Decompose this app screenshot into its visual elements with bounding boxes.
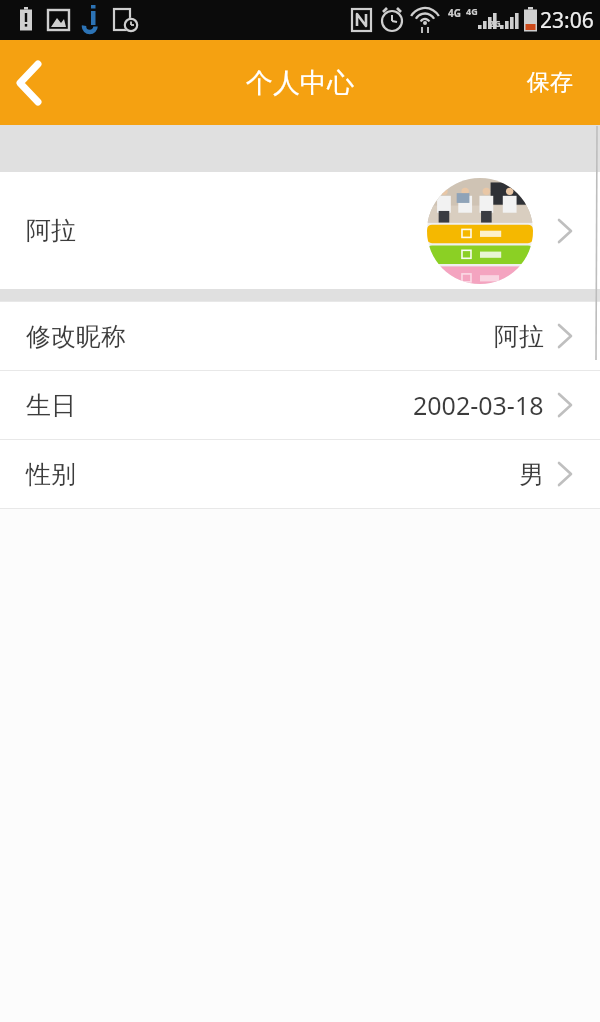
staticText: 2002-03-18 bbox=[413, 388, 544, 422]
staticText: 阿拉 bbox=[26, 215, 76, 246]
staticText: 4G bbox=[448, 6, 461, 20]
staticText: 男 bbox=[519, 459, 544, 490]
button[interactable]: 保存 bbox=[500, 40, 600, 125]
staticText: 保存 bbox=[527, 68, 573, 97]
button[interactable]: 生日 bbox=[0, 371, 600, 439]
button[interactable]: 性别 bbox=[0, 440, 600, 508]
staticText: 性别 bbox=[26, 459, 76, 490]
staticText: 修改昵称 bbox=[26, 321, 126, 352]
staticText: 个人中心 bbox=[246, 66, 354, 100]
button[interactable]: Back bbox=[0, 47, 72, 119]
staticText: 2G bbox=[489, 17, 501, 29]
button[interactable]: 修改昵称 bbox=[0, 302, 600, 370]
staticText: 4G bbox=[466, 5, 478, 17]
staticText: 阿拉 bbox=[494, 321, 544, 352]
button[interactable]: 阿拉 bbox=[0, 172, 600, 289]
staticText: 23:06 bbox=[540, 6, 594, 35]
staticText: 生日 bbox=[26, 390, 76, 421]
